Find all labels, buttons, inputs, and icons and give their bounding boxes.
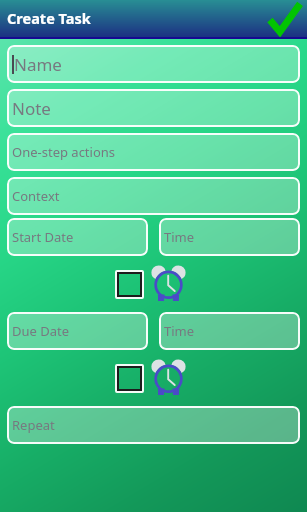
staticText: Start Date [12,228,74,246]
button[interactable]: Set alarm [151,265,189,303]
button[interactable]: Enable reminder [115,364,144,393]
button[interactable]: Time [159,312,300,350]
button[interactable]: Due Date [7,312,148,350]
button[interactable]: Context [7,177,300,215]
staticText: One-step actions [12,143,116,161]
staticText: Due Date [12,322,70,340]
button[interactable]: Repeat [7,406,300,444]
staticText: Create Task [7,8,91,28]
button[interactable]: Name [7,45,300,83]
button[interactable]: Note [7,89,300,127]
staticText: Repeat [12,416,55,434]
button[interactable]: Start Date [7,218,148,256]
staticText: Time [164,228,195,246]
staticText: Name [14,53,62,76]
staticText: Context [12,187,60,205]
button[interactable]: Save task [269,2,301,34]
staticText: Note [12,97,51,120]
staticText: Time [164,322,195,340]
button[interactable]: Time [159,218,300,256]
button[interactable]: One-step actions [7,133,300,171]
button[interactable]: Enable reminder [115,270,144,299]
button[interactable]: Set alarm [151,359,189,397]
